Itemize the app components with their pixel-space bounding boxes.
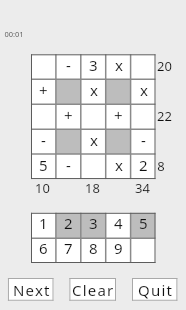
staticText: 2: [139, 155, 148, 175]
button[interactable]: board cell row 2 column 5: [131, 79, 156, 104]
staticText: 3: [89, 55, 98, 75]
staticText: x: [90, 80, 98, 100]
button[interactable]: board cell row 4 column 3: [81, 129, 106, 154]
staticText: 4: [114, 213, 123, 233]
button[interactable]: board cell row 1 column 3: [81, 54, 106, 79]
staticText: x: [115, 155, 123, 175]
staticText: +: [114, 105, 123, 125]
staticText: 00:01: [4, 29, 24, 39]
staticText: 8: [89, 238, 98, 258]
button[interactable]: board cell row 1 column 1: [31, 54, 56, 79]
staticText: +: [39, 80, 48, 100]
button[interactable]: board cell row 3 column 5: [131, 104, 156, 129]
staticText: Next: [13, 280, 51, 300]
staticText: 7: [64, 238, 73, 258]
button[interactable]: board cell row 1 column 2: [56, 54, 81, 79]
staticText: +: [64, 105, 73, 125]
staticText: 20: [157, 57, 172, 75]
button[interactable]: key 9: [106, 238, 131, 263]
button[interactable]: key 2: [56, 213, 81, 239]
button[interactable]: key 3: [81, 213, 106, 239]
staticText: x: [90, 130, 98, 150]
button[interactable]: board cell row 3 column 1: [31, 104, 56, 129]
button[interactable]: board cell row 5 column 4: [106, 154, 131, 179]
button[interactable]: board cell row 5 column 1: [31, 154, 56, 179]
button[interactable]: key 6: [31, 238, 56, 263]
staticText: -: [141, 130, 146, 150]
button[interactable]: Quit: [132, 278, 177, 301]
button[interactable]: board cell row 4 column 1: [31, 129, 56, 154]
staticText: 22: [157, 107, 172, 125]
button[interactable]: board cell row 2 column 3: [81, 79, 106, 104]
staticText: 8: [157, 157, 165, 175]
staticText: 2: [64, 213, 73, 233]
staticText: 5: [39, 155, 48, 175]
staticText: 5: [139, 213, 148, 233]
staticText: 18: [85, 179, 100, 193]
staticText: x: [140, 80, 148, 100]
button[interactable]: Next: [8, 278, 54, 301]
button[interactable]: board cell row 3 column 2: [56, 104, 81, 129]
button[interactable]: board cell row 4 column 5: [131, 129, 156, 154]
button[interactable]: board cell row 2 column 1: [31, 79, 56, 104]
staticText: 10: [35, 179, 50, 193]
staticText: 34: [135, 179, 150, 193]
staticText: -: [66, 55, 71, 75]
staticText: -: [41, 130, 46, 150]
button[interactable]: key 1: [31, 213, 56, 239]
button[interactable]: board cell row 5 column 5: [131, 154, 156, 179]
button[interactable]: board cell row 3 column 4: [106, 104, 131, 129]
button[interactable]: board cell row 1 column 4: [106, 54, 131, 79]
button[interactable]: key 5: [131, 213, 156, 239]
staticText: Quit: [138, 280, 174, 300]
button[interactable]: key 8: [81, 238, 106, 263]
staticText: 1: [39, 213, 48, 233]
button[interactable]: board cell row 5 column 2: [56, 154, 81, 179]
staticText: 9: [114, 238, 123, 258]
button[interactable]: empty key: [131, 238, 156, 263]
staticText: -: [66, 155, 71, 175]
button[interactable]: Clear: [69, 278, 116, 301]
button[interactable]: board cell row 5 column 3: [81, 154, 106, 179]
button[interactable]: key 7: [56, 238, 81, 263]
staticText: 3: [89, 213, 98, 233]
button[interactable]: board cell row 3 column 3: [81, 104, 106, 129]
staticText: 6: [39, 238, 48, 258]
button[interactable]: board cell row 1 column 5: [131, 54, 156, 79]
staticText: Clear: [72, 280, 115, 300]
staticText: x: [115, 55, 123, 75]
button[interactable]: key 4: [106, 213, 131, 239]
